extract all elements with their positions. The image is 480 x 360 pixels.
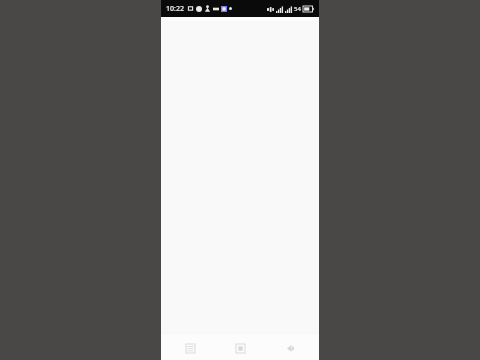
button[interactable]: Back: [279, 337, 301, 359]
button[interactable]: Home: [229, 337, 251, 359]
staticText: 10:22: [166, 4, 184, 14]
button[interactable]: Recents: [179, 337, 201, 359]
staticText: 54: [294, 5, 301, 13]
